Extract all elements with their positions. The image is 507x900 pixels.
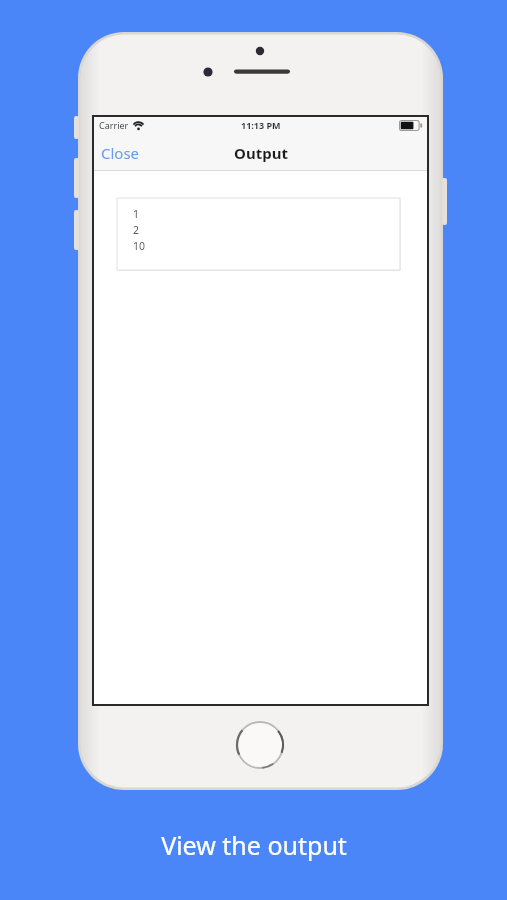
staticText: 11:13 PM	[241, 119, 281, 131]
staticText: 10	[133, 239, 146, 253]
button[interactable]: Close	[92, 135, 149, 171]
staticText: View the output	[161, 828, 347, 862]
staticText: 2	[133, 223, 140, 237]
staticText: Close	[101, 143, 140, 163]
staticText: Carrier	[99, 119, 129, 131]
staticText: Output	[234, 143, 288, 163]
staticText: 1	[133, 207, 140, 221]
